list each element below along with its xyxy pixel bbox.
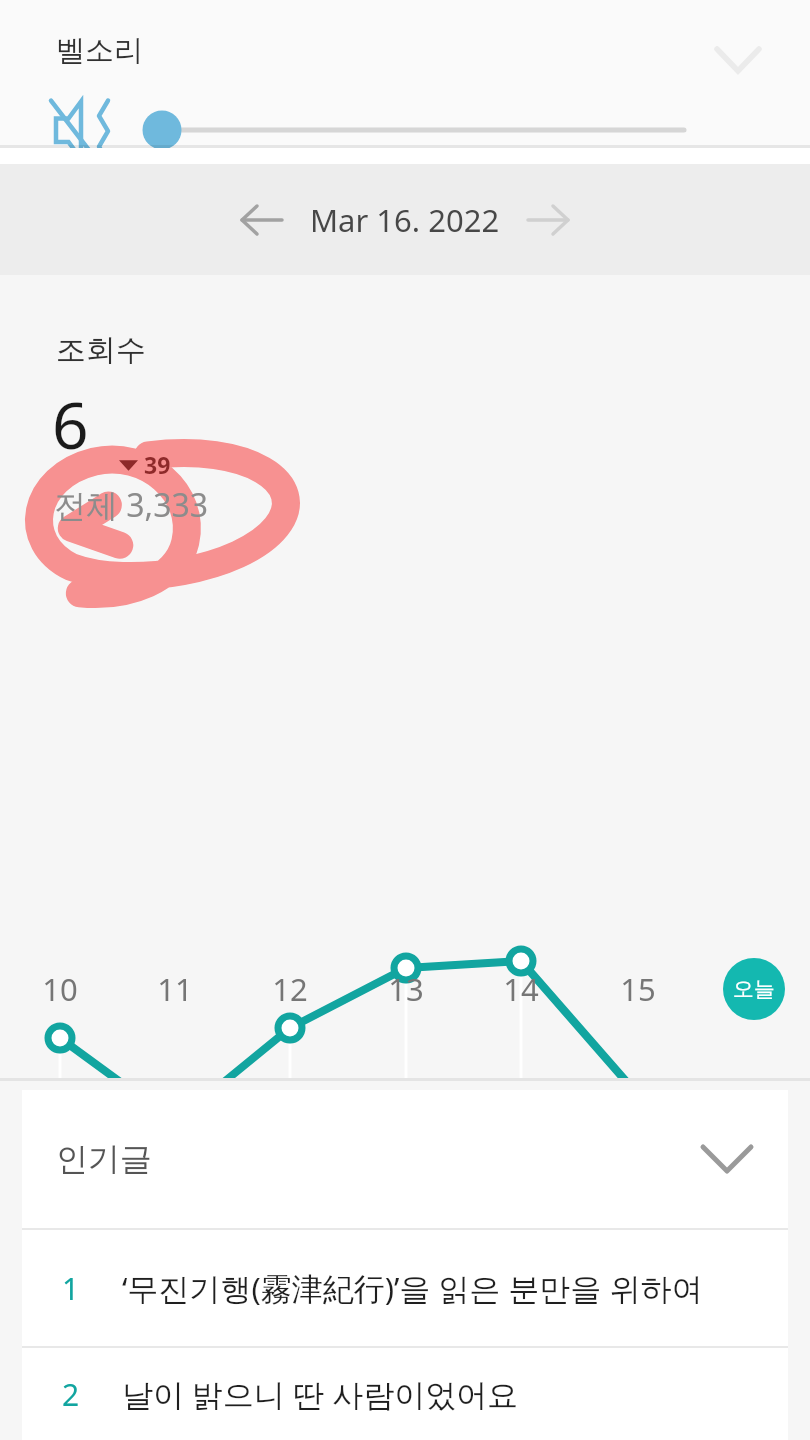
staticText: 6 [52,381,89,468]
staticText: ‘무진기행(霧津紀行)’을 읽은 분만을 위하여 [122,1267,703,1309]
staticText: 11 [157,968,193,1010]
button[interactable]: 인기글 [22,1090,788,1228]
staticText: 1 [62,1268,100,1309]
button[interactable]: 10 [24,958,96,1020]
button[interactable]: 14 [485,958,557,1020]
button[interactable]: Next day [512,184,584,256]
button[interactable]: 2 [22,1348,788,1440]
button[interactable]: 11 [139,958,211,1020]
staticText: 조회수 [56,331,146,369]
button[interactable]: Collapse volume panel [700,16,776,92]
staticText: 전체 3,333 [54,483,209,527]
button[interactable]: 13 [370,958,442,1020]
staticText: 39 [144,449,171,480]
staticText: 벨소리 [56,32,143,69]
button[interactable]: Ringtone volume slider [132,100,722,160]
staticText: 15 [620,968,656,1010]
staticText: 날이 밝으니 딴 사람이었어요 [122,1373,519,1415]
button[interactable]: Mute ringtone [46,92,124,170]
staticText: 13 [388,968,424,1010]
staticText: 10 [42,968,78,1010]
staticText: 2 [62,1374,100,1415]
button[interactable]: 오늘 [723,958,785,1020]
staticText: 14 [503,968,539,1010]
staticText: 인기글 [56,1139,152,1179]
button[interactable]: 15 [602,958,674,1020]
button[interactable]: 12 [254,958,326,1020]
staticText: 오늘 [733,976,775,1002]
staticText: 12 [272,968,308,1010]
button[interactable]: Previous day [226,184,298,256]
button[interactable]: 1 [22,1230,788,1346]
staticText: Mar 16. 2022 [310,199,500,241]
